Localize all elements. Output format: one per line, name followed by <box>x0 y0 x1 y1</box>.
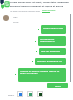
button[interactable]: Sed do eiusmod <box>39 48 66 55</box>
staticText: nostrud exerc <box>42 9 56 12</box>
staticText: Lorem ipsum dolor sit amet, consectetur … <box>10 1 69 4</box>
staticText: Ut enim ad minim veniam quis <box>10 10 41 13</box>
button[interactable]: Tempor incididunt ut <box>35 58 66 65</box>
staticText: Labore et dolore magna aliqua ut enim ad… <box>20 69 64 75</box>
button[interactable]: Lorem ipsum dol <box>41 25 66 34</box>
staticText: Sed do eiusmod <box>41 49 60 52</box>
button[interactable]: Image <box>17 91 23 97</box>
staticText: eiusmod tempor incididunt ut labore et d… <box>10 5 69 8</box>
staticText: Consectetur adipiscing el <box>40 37 64 43</box>
staticText: Lorem ipsum dol <box>43 26 63 29</box>
button[interactable]: Attachment <box>37 91 43 97</box>
button[interactable]: Consectetur adipiscing el <box>38 36 66 46</box>
staticText: Sure <box>13 20 19 23</box>
button[interactable]: Labore et dolore magna aliqua ut enim ad… <box>18 68 66 82</box>
button[interactable]: Avatar <box>3 15 9 21</box>
staticText: Reply <box>8 93 15 96</box>
staticText: Send <box>55 84 61 87</box>
button[interactable]: Sticker <box>27 91 33 97</box>
staticText: Hey <box>13 15 18 18</box>
staticText: Tempor incididunt ut <box>37 59 62 62</box>
button[interactable]: App logo <box>0 0 10 10</box>
button[interactable]: Link <box>42 9 56 13</box>
button[interactable]: Send <box>47 83 68 88</box>
